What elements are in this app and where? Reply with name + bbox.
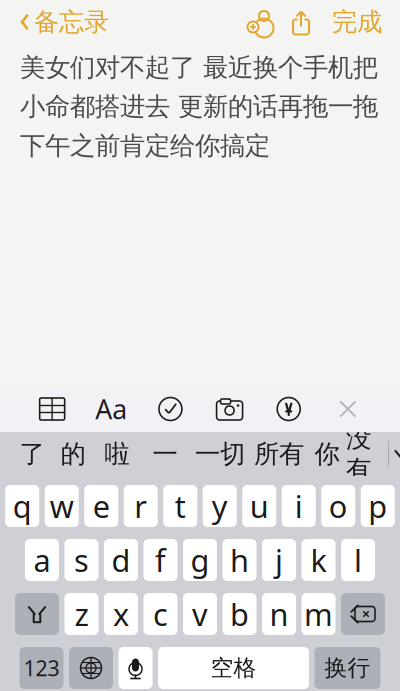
button[interactable]: Checklist xyxy=(149,392,191,426)
button[interactable]: Close xyxy=(327,392,369,426)
button[interactable]: Table xyxy=(31,392,73,426)
button[interactable]: Switch Keyboard xyxy=(69,647,113,689)
button[interactable]: 了 xyxy=(12,432,52,476)
staticText: 所有 xyxy=(254,438,304,469)
staticText: 一 xyxy=(152,438,177,469)
button[interactable]: y xyxy=(203,485,237,527)
staticText: 备忘录 xyxy=(34,6,109,37)
staticText: g xyxy=(190,540,209,580)
button[interactable]: v xyxy=(183,593,217,635)
button[interactable]: q xyxy=(5,485,39,527)
button[interactable]: 一切 xyxy=(190,432,250,476)
button[interactable]: l xyxy=(341,539,375,581)
staticText: v xyxy=(192,594,208,634)
staticText: 没有 xyxy=(346,423,371,485)
staticText: Aa xyxy=(95,391,127,427)
button[interactable]: f xyxy=(143,539,177,581)
button[interactable]: Camera xyxy=(209,392,251,426)
button[interactable]: t xyxy=(163,485,197,527)
button[interactable]: 完成 xyxy=(322,0,392,43)
button[interactable]: e xyxy=(84,485,118,527)
button[interactable]: z xyxy=(64,593,98,635)
button[interactable]: 备忘录 xyxy=(8,0,119,43)
button[interactable]: r xyxy=(124,485,158,527)
button[interactable]: 啦 xyxy=(94,432,140,476)
button[interactable]: o xyxy=(321,485,355,527)
staticText: p xyxy=(368,486,387,526)
button[interactable]: Add People xyxy=(238,4,280,40)
staticText: u xyxy=(250,486,269,526)
button[interactable]: x xyxy=(104,593,138,635)
button[interactable]: j xyxy=(262,539,296,581)
staticText: 的 xyxy=(60,438,85,469)
button[interactable]: n xyxy=(262,593,296,635)
button[interactable]: d xyxy=(104,539,138,581)
button[interactable]: Dictation xyxy=(118,647,152,689)
staticText: w xyxy=(50,486,74,526)
staticText: c xyxy=(153,594,168,634)
staticText: j xyxy=(275,540,283,580)
staticText: n xyxy=(269,594,288,634)
button[interactable]: b xyxy=(222,593,256,635)
staticText: 啦 xyxy=(104,438,129,469)
button[interactable]: w xyxy=(45,485,79,527)
button[interactable]: 123 xyxy=(19,647,63,689)
button[interactable]: i xyxy=(282,485,316,527)
staticText: 空格 xyxy=(210,654,256,682)
button[interactable]: 你 xyxy=(308,432,346,476)
staticText: i xyxy=(295,486,303,526)
button[interactable]: 所有 xyxy=(250,432,308,476)
button[interactable]: s xyxy=(64,539,98,581)
staticText: y xyxy=(212,486,228,526)
staticText: a xyxy=(33,540,50,580)
staticText: f xyxy=(155,540,166,580)
staticText: m xyxy=(304,594,333,634)
staticText: l xyxy=(354,540,362,580)
staticText: b xyxy=(230,594,249,634)
staticText: 了 xyxy=(19,438,44,469)
staticText: 你 xyxy=(314,438,339,469)
staticText: k xyxy=(310,540,326,580)
button[interactable]: g xyxy=(183,539,217,581)
staticText: o xyxy=(329,486,348,526)
button[interactable]: Markup xyxy=(268,392,310,426)
staticText: q xyxy=(13,486,32,526)
button[interactable]: m xyxy=(301,593,335,635)
button[interactable]: h xyxy=(222,539,256,581)
button[interactable]: 换行 xyxy=(314,647,380,689)
staticText: 换行 xyxy=(324,654,370,682)
staticText: d xyxy=(111,540,130,580)
button[interactable]: 一 xyxy=(140,432,190,476)
button[interactable]: 没有 xyxy=(346,432,388,476)
button[interactable]: More candidates xyxy=(389,432,400,476)
button[interactable]: Share xyxy=(280,4,322,40)
staticText: 一切 xyxy=(195,438,245,469)
staticText: s xyxy=(74,540,89,580)
button[interactable]: p xyxy=(361,485,395,527)
button[interactable]: 空格 xyxy=(158,647,309,689)
button[interactable]: Format xyxy=(90,392,132,426)
staticText: z xyxy=(74,594,88,634)
staticText: h xyxy=(230,540,249,580)
button[interactable]: u xyxy=(242,485,276,527)
staticText: 完成 xyxy=(332,6,382,37)
button[interactable]: 的 xyxy=(52,432,94,476)
staticText: 美女们对不起了 最近换个手机把小命都搭进去 更新的话再拖一拖 下午之前肯定给你搞… xyxy=(20,52,378,161)
staticText: r xyxy=(134,486,147,526)
button[interactable]: a xyxy=(25,539,59,581)
button[interactable]: Shift xyxy=(15,593,59,635)
staticText: e xyxy=(93,486,110,526)
button[interactable]: Delete xyxy=(341,593,385,635)
staticText: t xyxy=(175,486,186,526)
button[interactable]: c xyxy=(143,593,177,635)
staticText: x xyxy=(113,594,129,634)
button[interactable]: k xyxy=(301,539,335,581)
staticText: 123 xyxy=(23,654,59,682)
